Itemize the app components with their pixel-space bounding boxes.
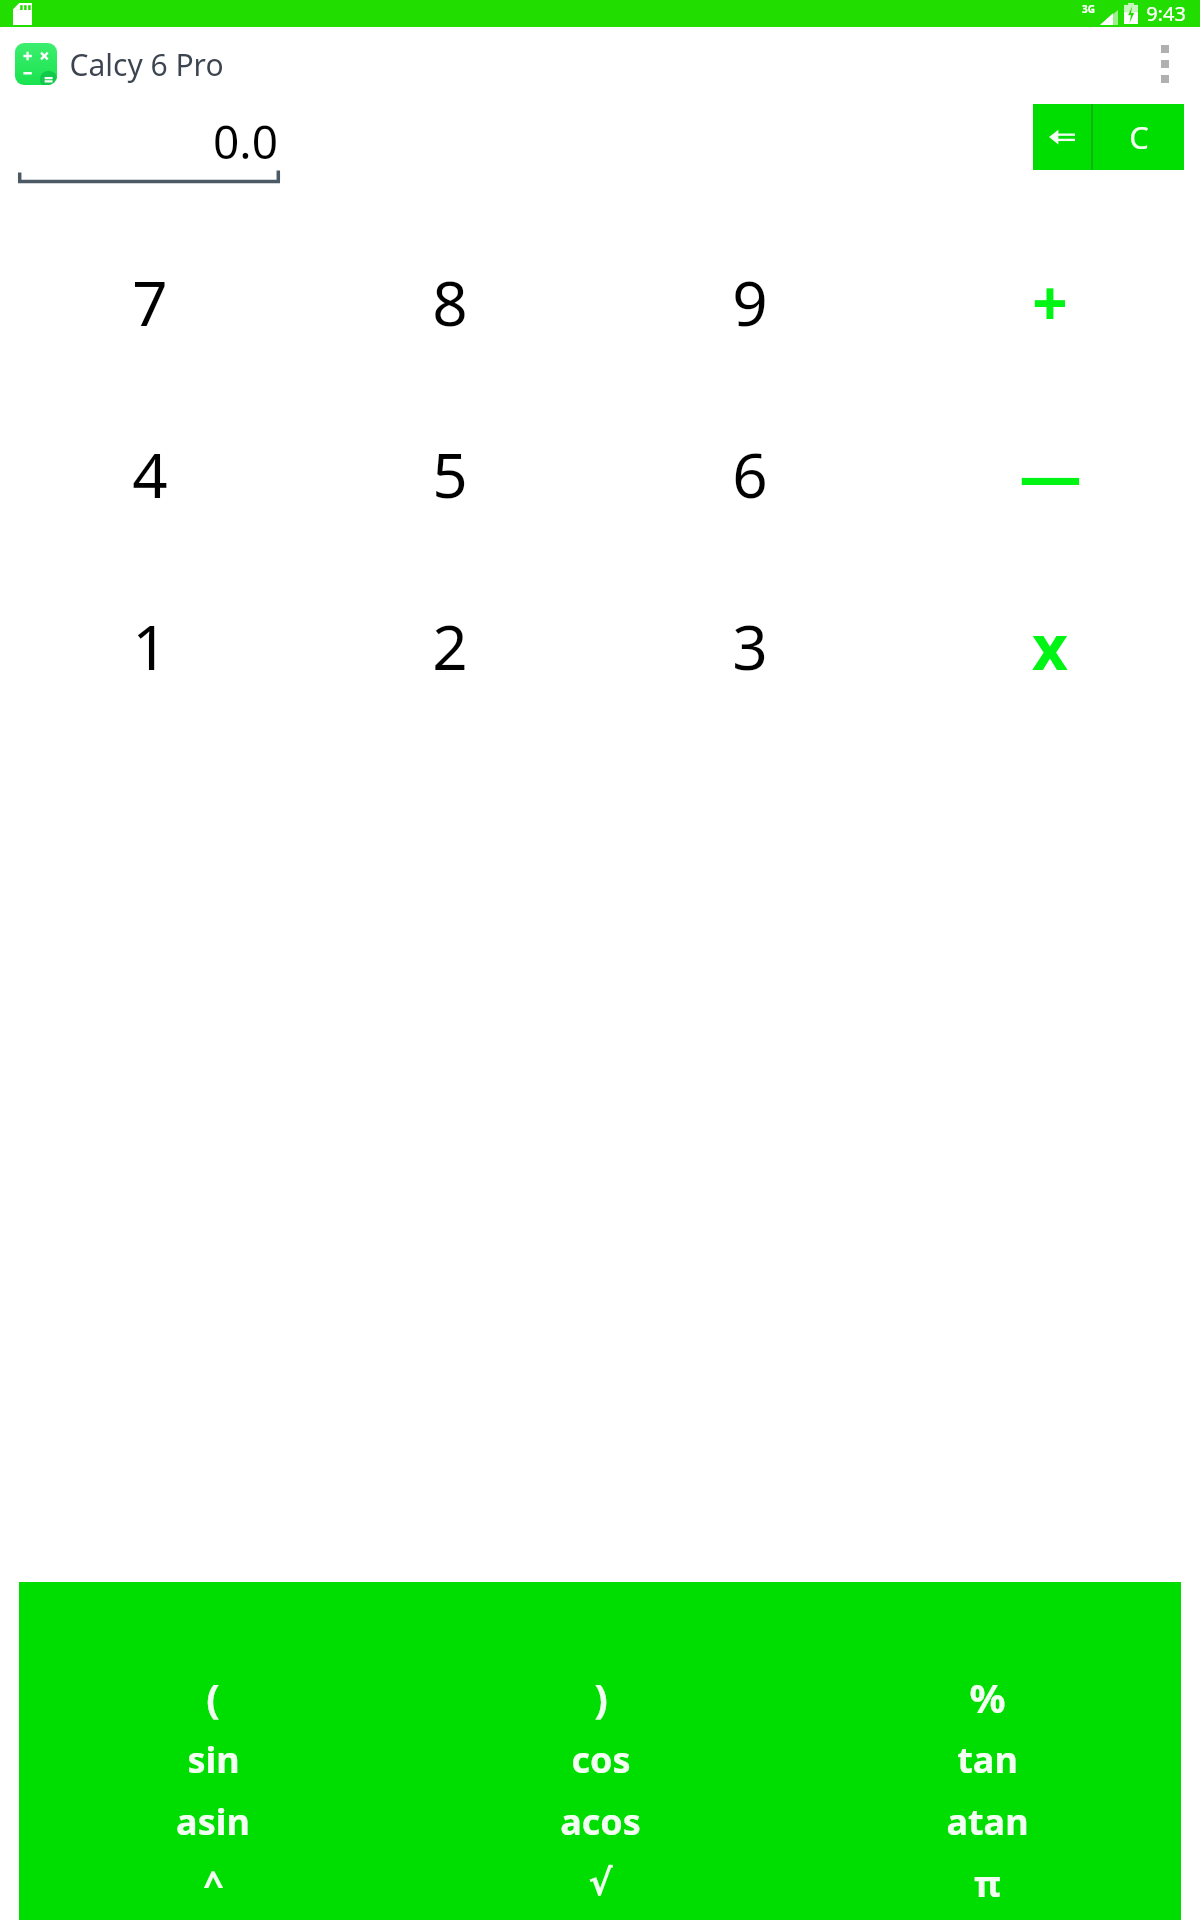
- staticText: atan: [946, 1797, 1029, 1846]
- button[interactable]: tan: [794, 1728, 1181, 1790]
- button[interactable]: 9: [600, 216, 900, 388]
- button[interactable]: cos: [407, 1728, 794, 1790]
- button[interactable]: Backspace: [1033, 104, 1091, 170]
- staticText: 6: [732, 432, 768, 516]
- button[interactable]: acos: [407, 1790, 794, 1852]
- button[interactable]: sin: [19, 1728, 407, 1790]
- button[interactable]: 6: [600, 388, 900, 560]
- button[interactable]: ^: [19, 1852, 407, 1914]
- staticText: 2: [432, 604, 468, 688]
- staticText: 8: [432, 260, 468, 344]
- staticText: —: [1019, 432, 1082, 516]
- button[interactable]: atan: [794, 1790, 1181, 1852]
- staticText: ^: [203, 1859, 224, 1908]
- staticText: √: [588, 1862, 613, 1904]
- staticText: 3G: [1082, 2, 1095, 16]
- button[interactable]: More options: [1142, 38, 1188, 90]
- button[interactable]: %: [794, 1666, 1181, 1728]
- button[interactable]: —: [900, 388, 1200, 560]
- staticText: %: [969, 1670, 1006, 1724]
- staticText: cos: [571, 1735, 631, 1784]
- button[interactable]: x: [900, 560, 1200, 732]
- staticText: 7: [132, 260, 168, 344]
- staticText: 0.0: [213, 110, 278, 173]
- staticText: π: [974, 1859, 1001, 1908]
- button[interactable]: 3: [600, 560, 900, 732]
- button[interactable]: C: [1093, 104, 1184, 170]
- staticText: 3: [732, 604, 768, 688]
- staticText: (: [206, 1670, 220, 1724]
- button[interactable]: asin: [19, 1790, 407, 1852]
- button[interactable]: 2: [300, 560, 600, 732]
- staticText: 9:43: [1146, 0, 1186, 27]
- button[interactable]: 5: [300, 388, 600, 560]
- button[interactable]: 1: [0, 560, 300, 732]
- button[interactable]: 7: [0, 216, 300, 388]
- staticText: asin: [176, 1797, 250, 1846]
- staticText: ): [594, 1670, 608, 1724]
- button[interactable]: 4: [0, 388, 300, 560]
- button[interactable]: (: [19, 1666, 407, 1728]
- staticText: tan: [957, 1735, 1018, 1784]
- staticText: 5: [432, 432, 468, 516]
- button[interactable]: 8: [300, 216, 600, 388]
- button[interactable]: ): [407, 1666, 794, 1728]
- staticText: 4: [132, 432, 168, 516]
- button[interactable]: [15, 43, 57, 85]
- staticText: +: [1032, 260, 1068, 344]
- staticText: 9: [732, 260, 768, 344]
- staticText: C: [1129, 116, 1149, 158]
- button[interactable]: +: [900, 216, 1200, 388]
- button[interactable]: π: [794, 1852, 1181, 1914]
- staticText: acos: [560, 1797, 641, 1846]
- staticText: Calcy 6 Pro: [69, 44, 224, 85]
- button[interactable]: √: [407, 1852, 794, 1914]
- button[interactable]: 0.0: [18, 107, 280, 184]
- staticText: 1: [132, 604, 168, 688]
- staticText: sin: [187, 1735, 240, 1784]
- staticText: x: [1032, 604, 1068, 688]
